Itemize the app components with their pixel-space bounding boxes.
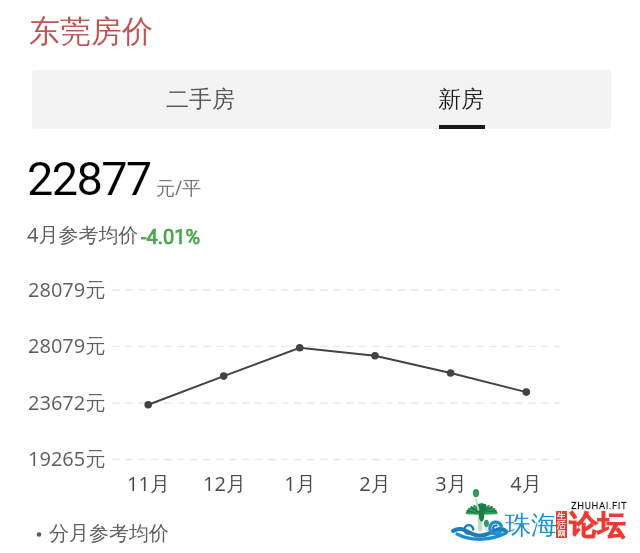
staticText: 23672元	[28, 389, 106, 416]
staticText: 12月	[203, 470, 246, 497]
staticText: 东莞房价	[29, 12, 153, 51]
staticText: 1月	[284, 470, 316, 497]
staticText: 分月参考均价	[49, 521, 169, 546]
staticText: ZHUHAI.FIT	[571, 500, 628, 511]
button[interactable]: 二手房	[32, 70, 322, 129]
staticText: 4月	[510, 470, 542, 497]
staticText: 3月	[435, 470, 467, 497]
staticText: 4月参考均价	[27, 221, 139, 248]
staticText: 28079元	[28, 276, 106, 303]
staticText: 2月	[359, 470, 391, 497]
staticText: 19265元	[28, 445, 106, 472]
staticText: 论坛	[569, 508, 625, 543]
staticText: 元/平	[156, 175, 202, 201]
staticText: 生活网	[557, 510, 568, 537]
staticText: 新房	[438, 85, 484, 114]
staticText: -4.01%	[141, 225, 201, 248]
button[interactable]: 月度参考均价折线图	[26, 270, 586, 495]
staticText: 22877	[27, 151, 151, 206]
staticText: 11月	[127, 470, 170, 497]
staticText: 珠海	[505, 509, 557, 542]
button[interactable]: 新房	[322, 70, 611, 129]
staticText: 二手房	[166, 85, 235, 114]
staticText: 28079元	[28, 332, 106, 359]
